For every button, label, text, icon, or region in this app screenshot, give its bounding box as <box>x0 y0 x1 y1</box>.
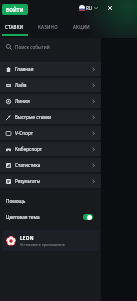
button[interactable]: Линия <box>0 94 101 108</box>
button[interactable]: Поиск событий <box>0 38 101 55</box>
staticText: Линия <box>15 98 30 104</box>
staticText: LEON <box>20 235 34 241</box>
staticText: RU <box>86 5 93 11</box>
button[interactable]: Статистика <box>0 158 101 172</box>
staticText: Результаты <box>15 178 41 184</box>
button[interactable]: LEON <box>2 230 99 251</box>
staticText: Статистика <box>15 162 41 168</box>
staticText: СТАВКИ <box>5 24 24 30</box>
button[interactable]: Главная <box>0 62 101 76</box>
staticText: АКЦИИ <box>73 24 90 30</box>
staticText: Киберспорт <box>15 146 42 152</box>
button[interactable]: V-Спорт <box>0 126 101 140</box>
button[interactable]: Цветовая тема <box>0 211 101 223</box>
staticText: Лайв <box>15 82 27 88</box>
button[interactable]: Language <box>79 2 98 14</box>
button[interactable]: АКЦИИ <box>66 24 96 38</box>
button[interactable]: Киберспорт <box>0 142 101 156</box>
button[interactable]: КАЗИНО <box>29 24 66 38</box>
staticText: Главная <box>15 66 34 72</box>
button[interactable]: СТАВКИ <box>0 24 29 38</box>
button[interactable]: Быстрые ставки <box>0 110 101 124</box>
staticText: Быстрые ставки <box>15 114 52 120</box>
button[interactable]: Лайв <box>0 78 101 92</box>
staticText: Установите приложение <box>20 242 65 247</box>
button[interactable]: Результаты <box>0 174 101 188</box>
staticText: ВОЙТИ <box>6 7 24 13</box>
staticText: КАЗИНО <box>38 24 58 30</box>
staticText: Поиск событий <box>15 44 50 50</box>
staticText: V-Спорт <box>15 130 33 136</box>
button[interactable]: ВОЙТИ <box>2 4 28 15</box>
button[interactable]: Close <box>103 1 117 15</box>
button[interactable]: Помощь <box>0 190 101 211</box>
staticText: Цветовая тема <box>6 214 40 220</box>
staticText: Помощь <box>6 198 26 204</box>
